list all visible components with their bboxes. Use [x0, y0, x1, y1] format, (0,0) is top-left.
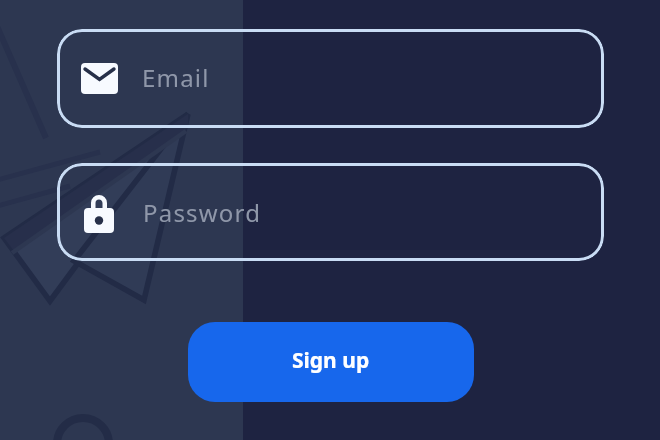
button[interactable]: Password — [57, 163, 604, 261]
staticText: Sign up — [292, 346, 370, 375]
button[interactable]: Sign up — [188, 322, 474, 402]
staticText: Password — [143, 196, 262, 229]
staticText: Email — [142, 61, 210, 94]
button[interactable]: Email — [57, 29, 604, 128]
